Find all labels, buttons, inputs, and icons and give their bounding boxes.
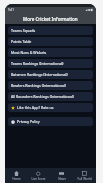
staticText: Teams Rankings (International) xyxy=(11,61,64,66)
button[interactable]: News xyxy=(50,168,73,183)
staticText: Home xyxy=(12,177,21,181)
staticText: Like this App? Rate us xyxy=(17,105,54,110)
staticText: More Cricket Information xyxy=(23,16,78,22)
button[interactable]: Privacy Policy xyxy=(8,117,93,126)
button[interactable]: Most Runs & Wickets xyxy=(8,48,93,57)
staticText: All Rounders Rankings (International) xyxy=(11,94,74,99)
staticText: Teams Squads xyxy=(11,28,36,33)
button[interactable]: Points Table xyxy=(8,37,93,46)
staticText: News xyxy=(58,177,66,181)
button[interactable]: Live Score xyxy=(27,168,50,183)
staticText: Bowlers Rankings (International) xyxy=(11,83,66,88)
button[interactable]: Teams Squads xyxy=(8,26,93,35)
button[interactable]: Full World xyxy=(73,168,96,183)
staticText: Full World xyxy=(77,177,92,181)
button[interactable]: Home xyxy=(5,168,27,183)
button[interactable]: Bowlers Rankings (International) xyxy=(8,81,93,90)
button[interactable]: Teams Rankings (International) xyxy=(8,59,93,68)
button[interactable]: All Rounders Rankings (International) xyxy=(8,92,93,101)
staticText: Live Score xyxy=(31,177,46,181)
staticText: Points Table xyxy=(11,39,32,44)
button[interactable]: Batsmen Rankings (International) xyxy=(8,70,93,79)
staticText: Batsmen Rankings (International) xyxy=(11,72,68,77)
staticText: Most Runs & Wickets xyxy=(11,50,47,55)
staticText: 9:41 xyxy=(8,8,14,12)
button[interactable]: Like this App? Rate us xyxy=(8,103,93,112)
staticText: Privacy Policy xyxy=(17,119,40,124)
